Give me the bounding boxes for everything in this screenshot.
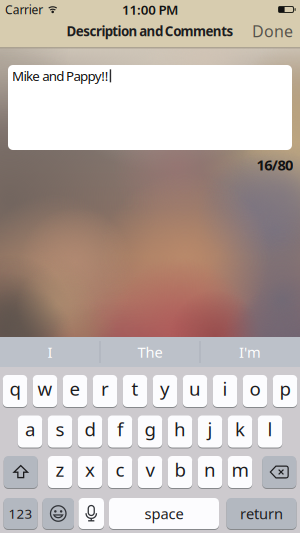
staticText: I'm bbox=[239, 342, 261, 362]
staticText: g bbox=[144, 417, 155, 441]
staticText: h bbox=[174, 417, 186, 441]
staticText: p bbox=[279, 376, 290, 401]
button[interactable]: i bbox=[213, 375, 237, 408]
button[interactable]: Dictate bbox=[78, 498, 104, 530]
button[interactable]: Description text field bbox=[8, 65, 292, 150]
button[interactable]: q bbox=[3, 375, 27, 408]
staticText: t bbox=[131, 376, 138, 401]
staticText: a bbox=[25, 417, 35, 441]
staticText: x bbox=[85, 457, 95, 482]
staticText: 123 bbox=[8, 505, 32, 522]
button[interactable]: Done bbox=[252, 20, 300, 42]
button[interactable]: o bbox=[243, 375, 267, 408]
staticText: 16/80 bbox=[257, 155, 293, 174]
staticText: 11:00 PM bbox=[122, 1, 178, 18]
button[interactable]: I bbox=[0, 337, 100, 367]
staticText: f bbox=[117, 417, 123, 441]
button[interactable]: g bbox=[138, 415, 162, 448]
button[interactable]: n bbox=[198, 456, 222, 489]
button[interactable]: a bbox=[18, 415, 42, 448]
button[interactable]: c bbox=[108, 456, 132, 489]
button[interactable]: v bbox=[138, 456, 162, 489]
button[interactable]: The bbox=[100, 337, 200, 367]
staticText: Description and Comments bbox=[66, 22, 234, 40]
staticText: Done bbox=[252, 20, 293, 42]
button[interactable]: f bbox=[108, 415, 132, 448]
button[interactable]: r bbox=[93, 375, 117, 408]
button[interactable]: h bbox=[168, 415, 192, 448]
button[interactable]: s bbox=[48, 415, 72, 448]
button[interactable]: I'm bbox=[200, 337, 300, 367]
staticText: The bbox=[137, 342, 162, 362]
button[interactable]: y bbox=[153, 375, 177, 408]
button[interactable]: z bbox=[48, 456, 72, 489]
staticText: j bbox=[207, 417, 212, 441]
button[interactable]: Shift bbox=[4, 456, 38, 489]
staticText: m bbox=[231, 457, 248, 482]
staticText: r bbox=[101, 376, 109, 401]
button[interactable]: p bbox=[273, 375, 297, 408]
button[interactable]: b bbox=[168, 456, 192, 489]
button[interactable]: k bbox=[228, 415, 252, 448]
button[interactable]: e bbox=[63, 375, 87, 408]
staticText: b bbox=[174, 457, 185, 482]
staticText: s bbox=[55, 417, 64, 441]
staticText: Carrier bbox=[5, 1, 43, 17]
staticText: z bbox=[55, 457, 64, 482]
button[interactable]: t bbox=[123, 375, 147, 408]
button[interactable]: Delete bbox=[262, 456, 296, 489]
staticText: d bbox=[84, 417, 95, 441]
staticText: Mike and Pappy!! bbox=[12, 67, 109, 85]
staticText: y bbox=[160, 376, 170, 401]
button[interactable]: return bbox=[226, 498, 296, 530]
button[interactable]: d bbox=[78, 415, 102, 448]
staticText: I bbox=[47, 342, 52, 362]
staticText: o bbox=[249, 376, 260, 401]
button[interactable]: Emoji bbox=[42, 498, 74, 530]
button[interactable]: x bbox=[78, 456, 102, 489]
button[interactable]: j bbox=[198, 415, 222, 448]
staticText: i bbox=[222, 376, 227, 401]
staticText: v bbox=[145, 457, 154, 482]
button[interactable]: l bbox=[258, 415, 282, 448]
button[interactable]: w bbox=[33, 375, 57, 408]
staticText: l bbox=[267, 417, 272, 441]
staticText: q bbox=[9, 376, 20, 401]
staticText: c bbox=[115, 457, 124, 482]
button[interactable]: 123 bbox=[3, 498, 37, 530]
button[interactable]: space bbox=[109, 498, 219, 530]
staticText: space bbox=[144, 504, 183, 523]
button[interactable]: m bbox=[228, 456, 252, 489]
staticText: k bbox=[235, 417, 245, 441]
staticText: e bbox=[69, 376, 80, 401]
staticText: u bbox=[189, 376, 201, 401]
staticText: n bbox=[204, 457, 216, 482]
staticText: w bbox=[37, 376, 52, 401]
staticText: return bbox=[240, 504, 283, 523]
button[interactable]: u bbox=[183, 375, 207, 408]
